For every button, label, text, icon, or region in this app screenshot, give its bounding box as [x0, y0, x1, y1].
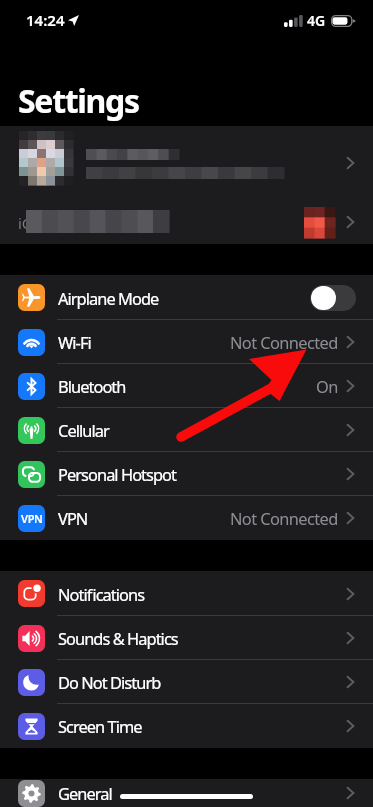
button[interactable]: Do Not Disturb [0, 660, 373, 704]
button[interactable]: Sounds & Haptics [0, 616, 373, 660]
staticText: On [316, 375, 338, 397]
staticText: 4G [307, 11, 326, 30]
staticText: Wi-Fi [58, 331, 91, 353]
button[interactable]: Bluetooth [0, 364, 373, 408]
staticText: Screen Time [58, 715, 142, 737]
button[interactable]: Screen Time [0, 704, 373, 748]
staticText: Cellular [58, 419, 109, 441]
staticText: General [58, 782, 112, 804]
staticText: Not Connected [230, 507, 338, 529]
button[interactable]: Airplane Mode [0, 275, 373, 320]
staticText: VPN [21, 511, 43, 526]
button[interactable] [0, 126, 373, 200]
button[interactable]: Cellular [0, 408, 373, 452]
staticText: Notifications [58, 583, 145, 605]
staticText: Not Connected [230, 331, 338, 353]
button[interactable]: Notifications [0, 571, 373, 616]
staticText: Settings [18, 79, 139, 123]
button[interactable]: Airplane Mode toggle [310, 285, 356, 311]
staticText: VPN [58, 507, 88, 529]
staticText: Bluetooth [58, 375, 126, 397]
button[interactable]: iC [0, 200, 373, 244]
staticText: Sounds & Haptics [58, 627, 178, 649]
button[interactable]: Personal Hotspot [0, 452, 373, 496]
staticText: Do Not Disturb [58, 671, 161, 693]
button[interactable]: Wi-Fi [0, 320, 373, 364]
button[interactable]: VPN [0, 496, 373, 540]
staticText: 14:24 [26, 10, 65, 30]
staticText: iC [18, 213, 32, 233]
button[interactable]: General [0, 779, 373, 807]
staticText: Personal Hotspot [58, 463, 177, 485]
staticText: Airplane Mode [58, 287, 159, 309]
